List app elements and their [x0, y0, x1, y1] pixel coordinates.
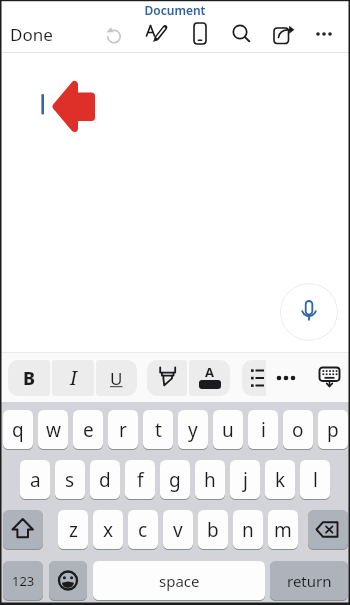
staticText: h [204, 467, 216, 493]
button[interactable]: m [268, 510, 298, 549]
button[interactable]: f [125, 460, 155, 499]
staticText: x [103, 517, 114, 543]
staticText: m [274, 517, 292, 543]
button[interactable]: p [318, 410, 348, 449]
button[interactable]: space [93, 561, 265, 600]
staticText: b [207, 517, 219, 543]
staticText: U [110, 367, 123, 390]
staticText: r [119, 417, 127, 443]
button[interactable] [147, 360, 187, 396]
button[interactable]: Done [10, 22, 62, 46]
button[interactable]: v [163, 510, 193, 549]
button[interactable]: u [213, 410, 243, 449]
button[interactable]: j [230, 460, 260, 499]
staticText: i [261, 417, 266, 443]
button[interactable]: x [93, 510, 123, 549]
button[interactable]: I [52, 360, 94, 396]
button[interactable]: i [248, 410, 278, 449]
button[interactable] [142, 19, 172, 49]
button[interactable] [274, 360, 298, 396]
staticText: v [173, 517, 183, 543]
button[interactable]: h [195, 460, 225, 499]
staticText: space [159, 571, 200, 591]
button[interactable]: o [283, 410, 313, 449]
button[interactable]: A [189, 360, 230, 396]
staticText: f [137, 467, 144, 493]
button[interactable] [227, 19, 257, 49]
staticText: k [275, 467, 286, 493]
staticText: Done [10, 23, 53, 46]
button[interactable]: r [108, 410, 138, 449]
button[interactable]: d [90, 460, 120, 499]
staticText: s [65, 467, 75, 493]
button[interactable]: q [3, 410, 33, 449]
staticText: c [138, 517, 148, 543]
button[interactable]: w [38, 410, 68, 449]
staticText: I [70, 365, 77, 391]
button[interactable]: z [58, 510, 88, 549]
button[interactable] [315, 357, 345, 395]
button[interactable]: y [178, 410, 208, 449]
staticText: t [155, 417, 162, 443]
staticText: A [205, 363, 214, 381]
button[interactable]: return [270, 561, 348, 600]
button[interactable]: k [265, 460, 295, 499]
staticText: w [46, 417, 61, 443]
button[interactable]: B [8, 360, 50, 396]
staticText: a [30, 467, 41, 493]
button[interactable]: g [160, 460, 190, 499]
staticText: d [99, 467, 111, 493]
staticText: l [313, 467, 318, 493]
button[interactable] [310, 19, 340, 49]
button[interactable]: n [233, 510, 263, 549]
staticText: e [83, 417, 94, 443]
staticText: u [222, 417, 234, 443]
staticText: n [242, 517, 254, 543]
button[interactable]: e [73, 410, 103, 449]
button[interactable] [280, 283, 338, 341]
staticText: g [169, 467, 181, 493]
button[interactable]: a [20, 460, 50, 499]
button[interactable] [308, 510, 348, 549]
staticText: q [12, 417, 24, 443]
button[interactable]: c [128, 510, 158, 549]
staticText: 123 [12, 572, 35, 590]
staticText: return [287, 571, 332, 591]
staticText: p [327, 417, 339, 443]
staticText: j [243, 467, 248, 493]
staticText: z [69, 517, 78, 543]
staticText: o [292, 417, 304, 443]
button[interactable]: b [198, 510, 228, 549]
button[interactable] [185, 19, 215, 49]
button[interactable]: l [300, 460, 330, 499]
button[interactable] [270, 19, 300, 49]
button[interactable] [242, 360, 266, 396]
button[interactable]: 123 [3, 561, 43, 600]
button[interactable] [3, 510, 43, 549]
staticText: y [188, 417, 198, 443]
staticText: Document [0, 2, 350, 18]
staticText: B [23, 366, 36, 391]
button[interactable] [49, 561, 87, 600]
button[interactable]: s [55, 460, 85, 499]
button[interactable]: U [96, 360, 137, 396]
button[interactable]: t [143, 410, 173, 449]
button[interactable] [98, 19, 128, 49]
